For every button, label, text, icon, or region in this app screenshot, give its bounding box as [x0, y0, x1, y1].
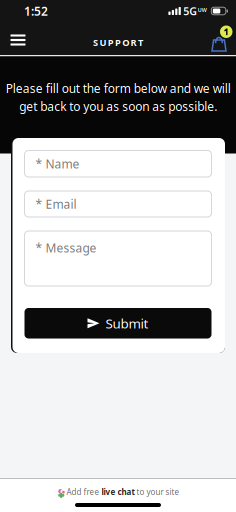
staticText: U — [99, 36, 106, 49]
staticText: S — [93, 36, 98, 49]
staticText: Add free — [66, 486, 99, 497]
staticText: O — [122, 36, 129, 49]
button[interactable]: * Email — [24, 191, 211, 217]
button[interactable]: * Message — [24, 231, 211, 286]
staticText: Submit — [105, 314, 148, 332]
staticText: Please fill out the form below and we wi… — [5, 80, 230, 114]
button[interactable]: Submit — [24, 308, 211, 338]
staticText: P — [115, 36, 121, 49]
button[interactable]: Menu — [0, 25, 33, 52]
staticText: R — [131, 36, 137, 49]
staticText: live chat — [101, 486, 134, 497]
staticText: * Message — [35, 240, 96, 256]
staticText: 1:52 — [24, 3, 48, 19]
staticText: UW — [198, 6, 207, 14]
staticText: T — [138, 36, 143, 49]
staticText: 5G — [183, 4, 197, 18]
button[interactable]: * Name — [24, 150, 211, 177]
staticText: to your site — [136, 486, 179, 497]
staticText: P — [108, 36, 114, 49]
button[interactable]: Add free live chat to your site — [56, 478, 179, 497]
staticText: * Name — [35, 156, 79, 172]
staticText: * Email — [35, 196, 76, 212]
button[interactable]: Cart, 1 item — [210, 25, 236, 51]
